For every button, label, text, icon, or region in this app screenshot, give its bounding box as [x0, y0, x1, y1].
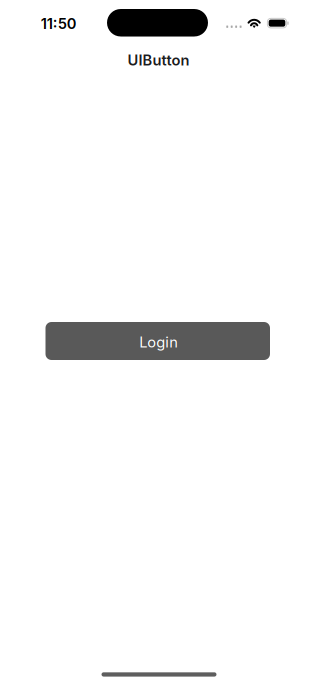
staticText: 11:50: [41, 15, 77, 32]
button[interactable]: Login: [45, 322, 270, 360]
staticText: Login: [139, 333, 178, 351]
staticText: UIButton: [128, 51, 190, 69]
